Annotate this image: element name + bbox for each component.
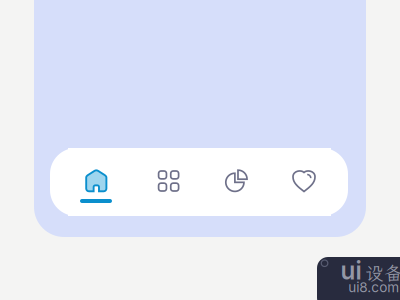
staticText: 设备 — [365, 260, 400, 285]
button[interactable]: Statistics — [208, 148, 264, 216]
staticText: ui — [341, 255, 362, 285]
staticText: ui8.com — [348, 279, 399, 295]
button[interactable]: Favorites — [275, 148, 331, 216]
button[interactable]: Categories — [140, 148, 196, 216]
button[interactable]: Home — [68, 148, 124, 216]
